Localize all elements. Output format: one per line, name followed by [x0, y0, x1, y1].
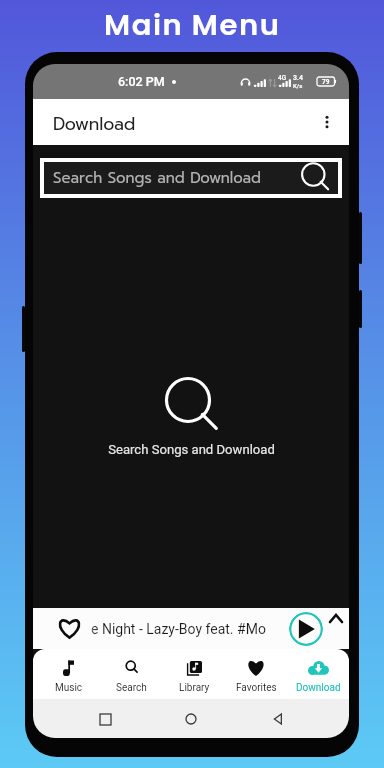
button[interactable]: Home [176, 704, 206, 734]
staticText: Search Songs and Download [53, 167, 261, 190]
staticText: 4G [278, 74, 287, 82]
staticText: Search [116, 682, 147, 694]
button[interactable]: Search [100, 654, 163, 699]
staticText: Favorites [236, 682, 277, 694]
button[interactable]: Play [289, 612, 323, 646]
button[interactable]: Download [287, 654, 349, 699]
staticText: e Night - Lazy-Boy feat. #Mo [91, 621, 266, 637]
staticText: K/s [293, 82, 303, 89]
button[interactable]: More options [311, 106, 343, 138]
button[interactable]: Expand player [327, 610, 344, 627]
staticText: Library [179, 682, 210, 694]
button[interactable]: Search Songs and Download [44, 162, 338, 194]
button[interactable]: Music [37, 654, 100, 699]
staticText: 3.4 [293, 74, 303, 82]
button[interactable]: Back [263, 704, 293, 734]
staticText: Download [296, 682, 341, 694]
button[interactable]: Download [33, 99, 349, 145]
other: Search [301, 163, 333, 193]
button[interactable]: Favorite [57, 618, 82, 639]
staticText: Music [55, 682, 83, 694]
button[interactable]: Favorite [33, 608, 349, 649]
button[interactable]: Recents [90, 704, 120, 734]
staticText: 6:02 PM [118, 74, 165, 89]
staticText: 79 [322, 78, 330, 86]
button[interactable]: Favorites [225, 654, 287, 699]
staticText: Main Menu [104, 5, 281, 46]
staticText: Download [53, 111, 136, 137]
button[interactable]: Library [163, 654, 225, 699]
staticText: Search Songs and Download [108, 442, 275, 457]
